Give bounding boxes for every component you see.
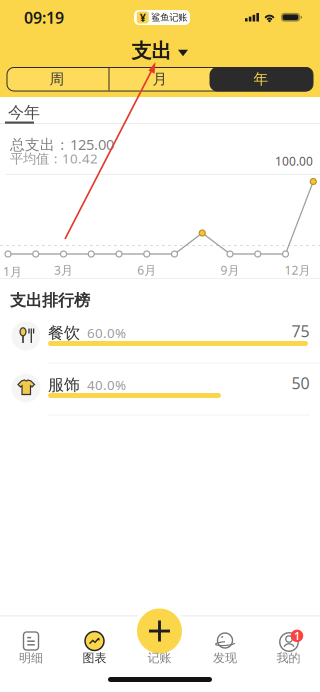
- staticText: 发现: [213, 651, 237, 665]
- staticText: 3月: [54, 262, 73, 278]
- button[interactable]: 发现: [196, 626, 254, 672]
- button[interactable]: 记账: [133, 604, 186, 657]
- button[interactable]: 周: [7, 67, 107, 90]
- staticText: 100.00: [275, 153, 313, 169]
- staticText: 40.0%: [87, 376, 126, 394]
- staticText: 鲨鱼记账: [151, 12, 187, 23]
- staticText: 餐饮: [48, 323, 80, 343]
- staticText: 支出: [131, 39, 171, 63]
- staticText: 我的: [276, 651, 300, 665]
- staticText: 记账: [147, 651, 171, 665]
- staticText: 平均值：10.42: [10, 149, 98, 167]
- staticText: 1月: [3, 263, 22, 279]
- staticText: 09:19: [24, 7, 64, 28]
- button[interactable]: 今年: [8, 102, 40, 122]
- staticText: 总支出：125.00: [10, 134, 114, 154]
- staticText: ¥: [140, 10, 146, 25]
- button[interactable]: 图表: [65, 626, 123, 672]
- staticText: 周: [49, 70, 64, 88]
- staticText: 1: [294, 629, 300, 643]
- staticText: 75: [291, 320, 309, 342]
- staticText: 年: [253, 70, 268, 88]
- button[interactable]: 1: [259, 626, 317, 672]
- button[interactable]: 明细: [2, 626, 60, 672]
- staticText: 9月: [220, 262, 239, 278]
- staticText: 50: [291, 372, 309, 394]
- staticText: 支出排行榜: [10, 290, 90, 310]
- staticText: 月: [152, 70, 167, 88]
- staticText: 今年: [8, 102, 40, 122]
- button[interactable]: 月: [110, 67, 210, 90]
- button[interactable]: 年: [211, 67, 311, 90]
- button[interactable]: 服饰: [0, 362, 320, 414]
- staticText: 12月: [284, 262, 310, 278]
- staticText: 服饰: [48, 375, 80, 395]
- button[interactable]: 餐饮: [0, 310, 320, 362]
- button[interactable]: 支出: [131, 39, 188, 63]
- staticText: 6月: [137, 262, 156, 278]
- staticText: 图表: [82, 651, 106, 665]
- staticText: 60.0%: [87, 324, 126, 342]
- staticText: 明细: [19, 651, 43, 665]
